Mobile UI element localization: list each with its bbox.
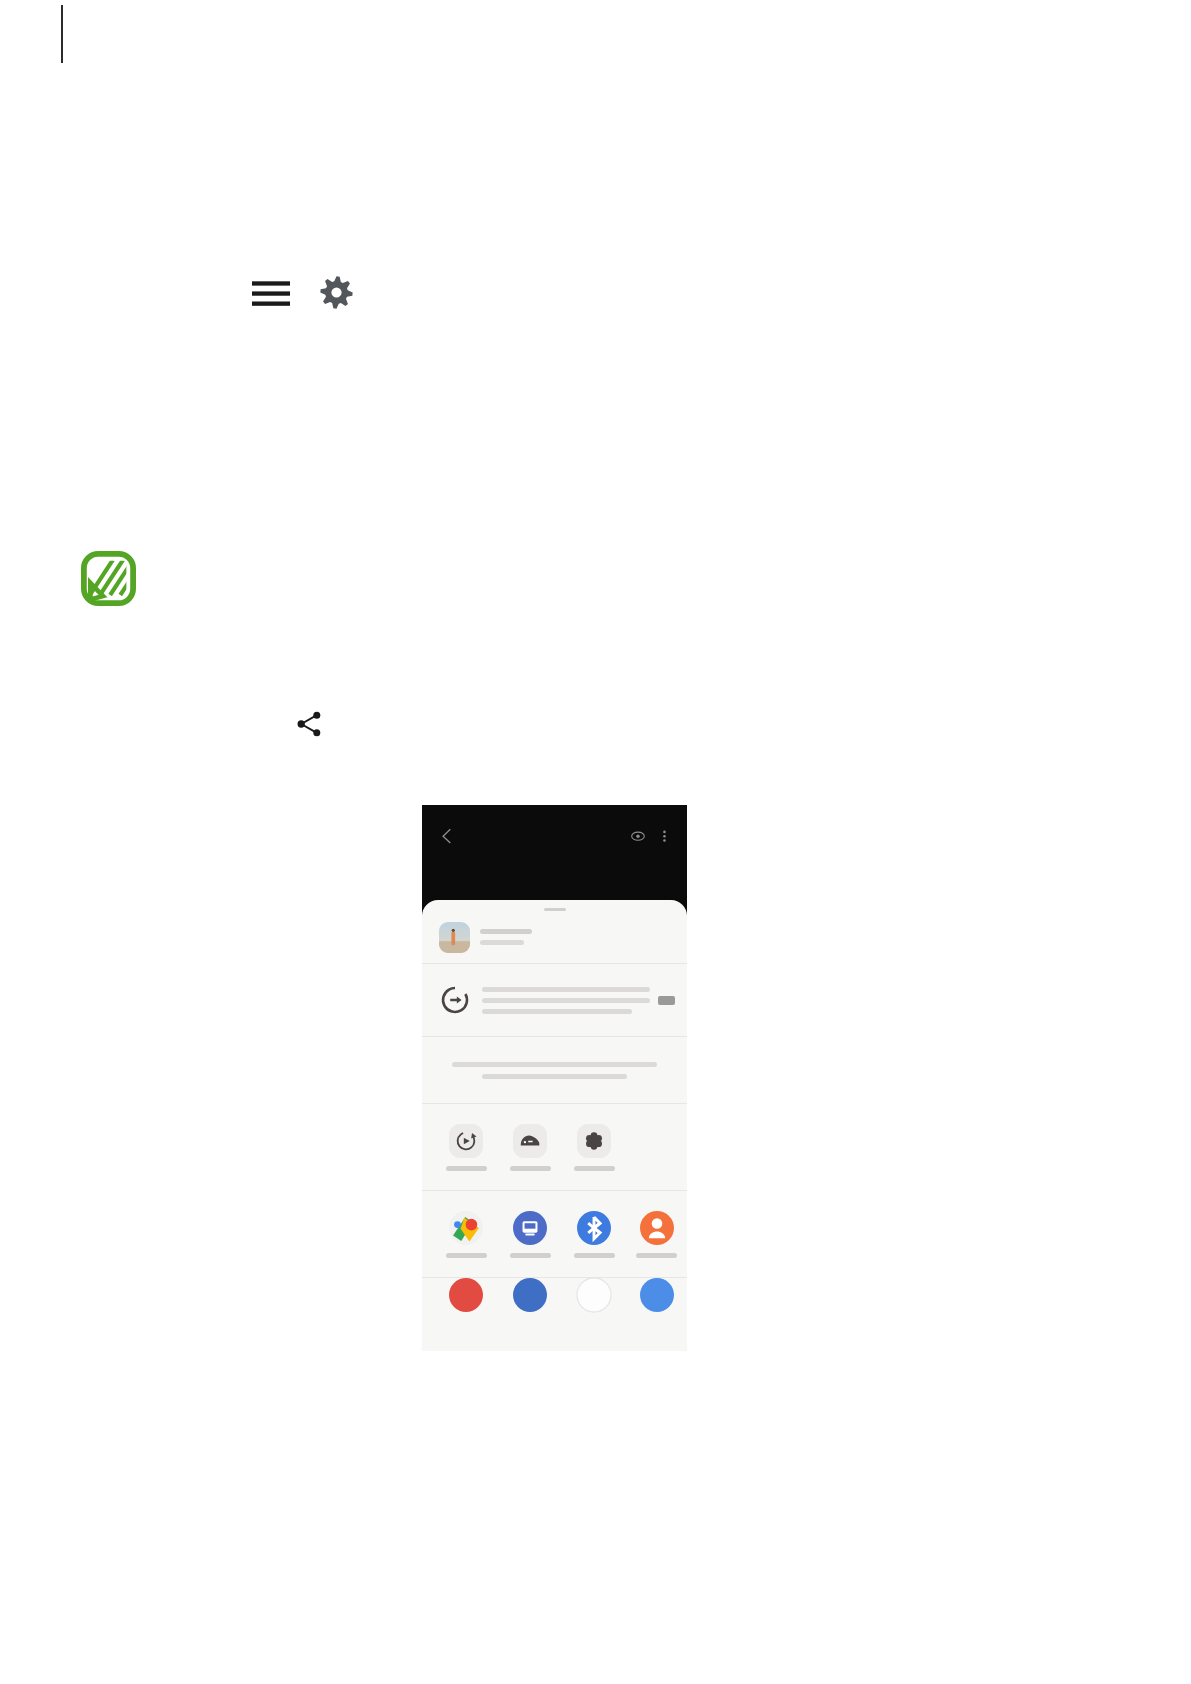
button[interactable]	[562, 1211, 626, 1258]
button[interactable]	[658, 996, 675, 1005]
button[interactable]: Settings	[320, 276, 353, 309]
button[interactable]	[498, 1278, 562, 1312]
button[interactable]: Share	[296, 711, 322, 737]
button[interactable]	[626, 1211, 687, 1258]
button[interactable]	[498, 1211, 562, 1258]
button[interactable]	[562, 1278, 626, 1312]
button[interactable]	[434, 1124, 498, 1171]
button[interactable]	[422, 911, 687, 963]
button[interactable]	[434, 1278, 498, 1312]
button[interactable]	[498, 1124, 562, 1171]
button[interactable]	[422, 964, 687, 1036]
button[interactable]: Menu	[252, 277, 292, 309]
button[interactable]	[626, 1278, 687, 1312]
button[interactable]	[434, 1211, 498, 1258]
button[interactable]	[562, 1124, 626, 1171]
